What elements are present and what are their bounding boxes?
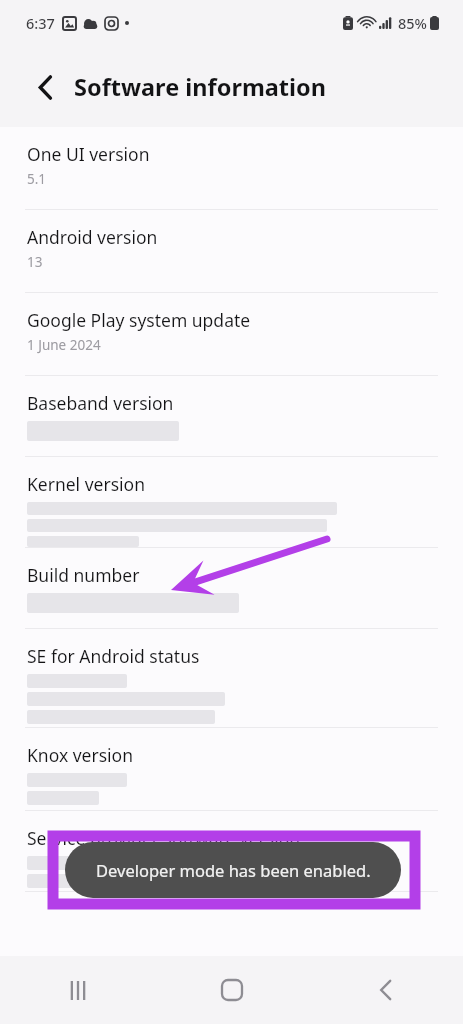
- button[interactable]: One UI version: [0, 127, 463, 209]
- button[interactable]: Knox version: [0, 728, 463, 810]
- button[interactable]: Baseband version: [0, 376, 463, 456]
- staticText: Android version: [27, 225, 158, 249]
- staticText: 13: [27, 253, 43, 271]
- button[interactable]: Recent apps: [0, 956, 155, 1024]
- staticText: Developer mode has been enabled.: [96, 859, 371, 881]
- staticText: 85%: [398, 13, 427, 33]
- button[interactable]: Build number: [0, 548, 463, 628]
- staticText: One UI version: [27, 142, 150, 166]
- staticText: 1 June 2024: [27, 336, 101, 354]
- staticText: Build number: [27, 563, 140, 587]
- staticText: SE for Android status: [27, 644, 200, 668]
- staticText: Knox version: [27, 743, 133, 767]
- staticText: 5.1: [27, 170, 47, 188]
- button[interactable]: Back: [309, 956, 463, 1024]
- staticText: Baseband version: [27, 391, 174, 415]
- staticText: Kernel version: [27, 472, 145, 496]
- button[interactable]: Developer mode has been enabled.: [65, 842, 401, 898]
- button[interactable]: Google Play system update: [0, 293, 463, 375]
- staticText: Software information: [74, 71, 327, 103]
- staticText: 6:37: [26, 13, 55, 33]
- button[interactable]: Android version: [0, 210, 463, 292]
- staticText: Service provider software version: [27, 826, 301, 850]
- button[interactable]: Home: [155, 956, 309, 1024]
- button[interactable]: Service provider software version: [0, 811, 463, 891]
- button[interactable]: Kernel version: [0, 457, 463, 547]
- button[interactable]: Back: [24, 66, 66, 108]
- staticText: Google Play system update: [27, 308, 251, 332]
- button[interactable]: SE for Android status: [0, 629, 463, 727]
